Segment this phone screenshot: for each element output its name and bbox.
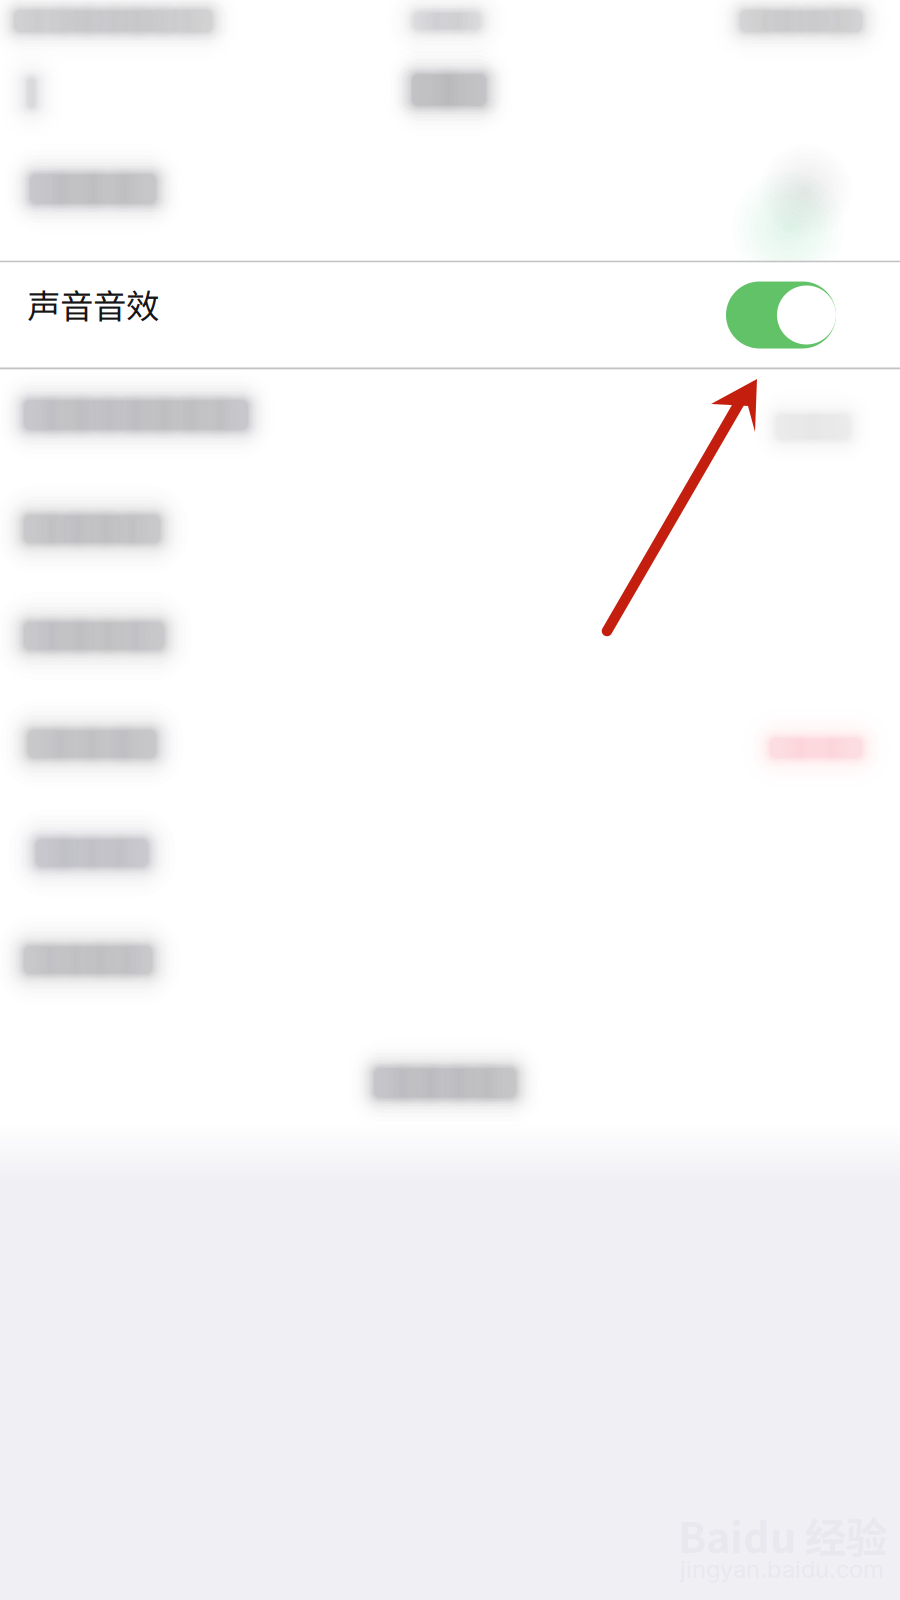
button[interactable]: 声音音效	[0, 261, 900, 369]
staticText: Baidu 经验	[678, 1505, 887, 1565]
staticText: 声音音效	[27, 280, 159, 328]
